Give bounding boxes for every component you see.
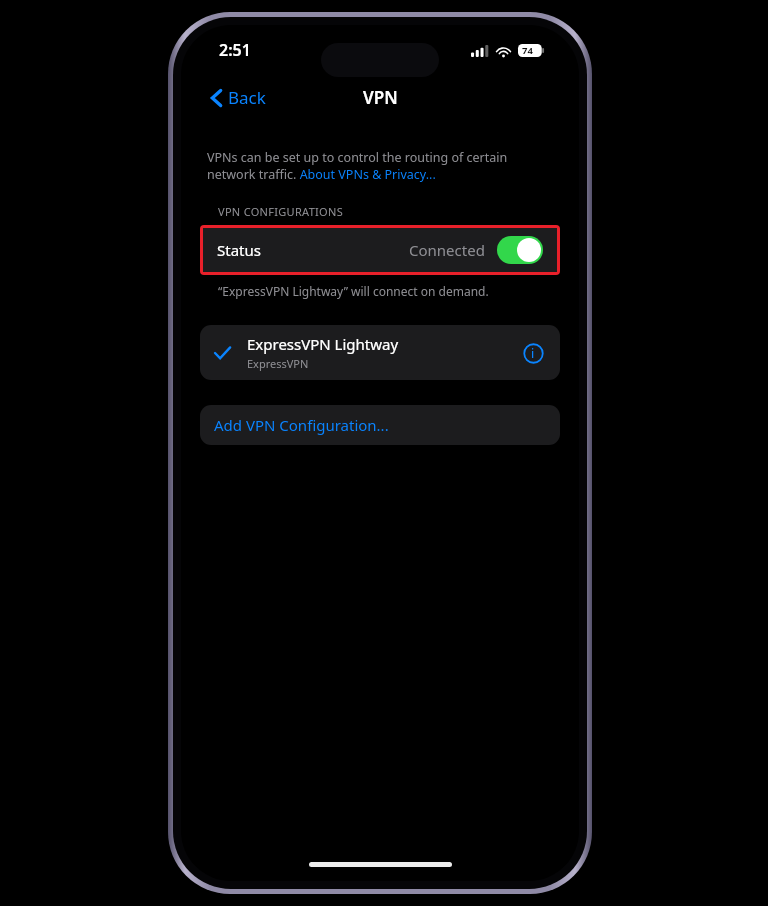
button[interactable]: Status (203, 228, 557, 272)
button[interactable]: VPN status toggle (497, 236, 543, 264)
staticText: VPN (363, 86, 398, 109)
staticText: 2:51 (219, 39, 251, 61)
button[interactable]: ExpressVPN Lightway (200, 325, 560, 380)
staticText: Back (228, 86, 266, 109)
staticText: “ExpressVPN Lightway” will connect on de… (218, 283, 553, 299)
staticText: i (531, 345, 535, 361)
staticText: ExpressVPN (247, 356, 309, 371)
staticText: Status (217, 240, 261, 260)
button[interactable]: More info (520, 340, 546, 366)
staticText: VPN CONFIGURATIONS (218, 204, 579, 219)
staticText: 74 (522, 44, 533, 57)
staticText: Connected (409, 240, 485, 260)
staticText: VPNs can be set up to control the routin… (207, 149, 553, 182)
staticText: Add VPN Configuration... (214, 415, 389, 435)
staticText: ExpressVPN Lightway (247, 334, 399, 354)
button[interactable]: Back (205, 82, 272, 113)
button[interactable]: Add VPN Configuration... (200, 405, 560, 445)
